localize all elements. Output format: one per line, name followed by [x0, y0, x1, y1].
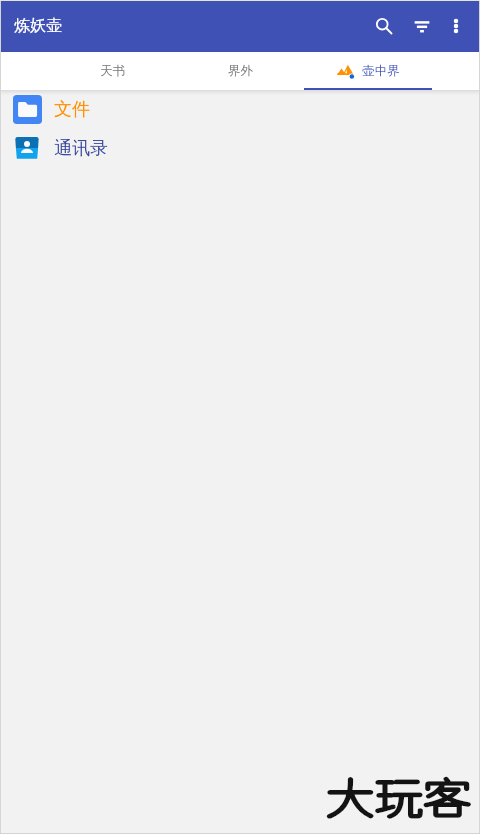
staticText: 界外	[228, 63, 253, 79]
staticText: 炼妖壶	[14, 16, 62, 36]
button[interactable]: 天书	[48, 52, 176, 90]
staticText: 文件	[54, 98, 90, 121]
button[interactable]: 壶中界	[304, 52, 432, 90]
button[interactable]: Filter	[400, 4, 444, 48]
staticText: 大玩客	[326, 772, 472, 822]
staticText: 通讯录	[54, 137, 108, 160]
staticText: 壶中界	[362, 63, 400, 79]
button[interactable]: More options	[434, 4, 478, 48]
button[interactable]: Search	[362, 4, 406, 48]
button[interactable]: 界外	[176, 52, 304, 90]
staticText: 天书	[100, 63, 125, 79]
staticText: 大玩客	[326, 772, 472, 822]
button[interactable]: 通讯录	[0, 129, 480, 167]
button[interactable]: 文件	[0, 90, 480, 128]
